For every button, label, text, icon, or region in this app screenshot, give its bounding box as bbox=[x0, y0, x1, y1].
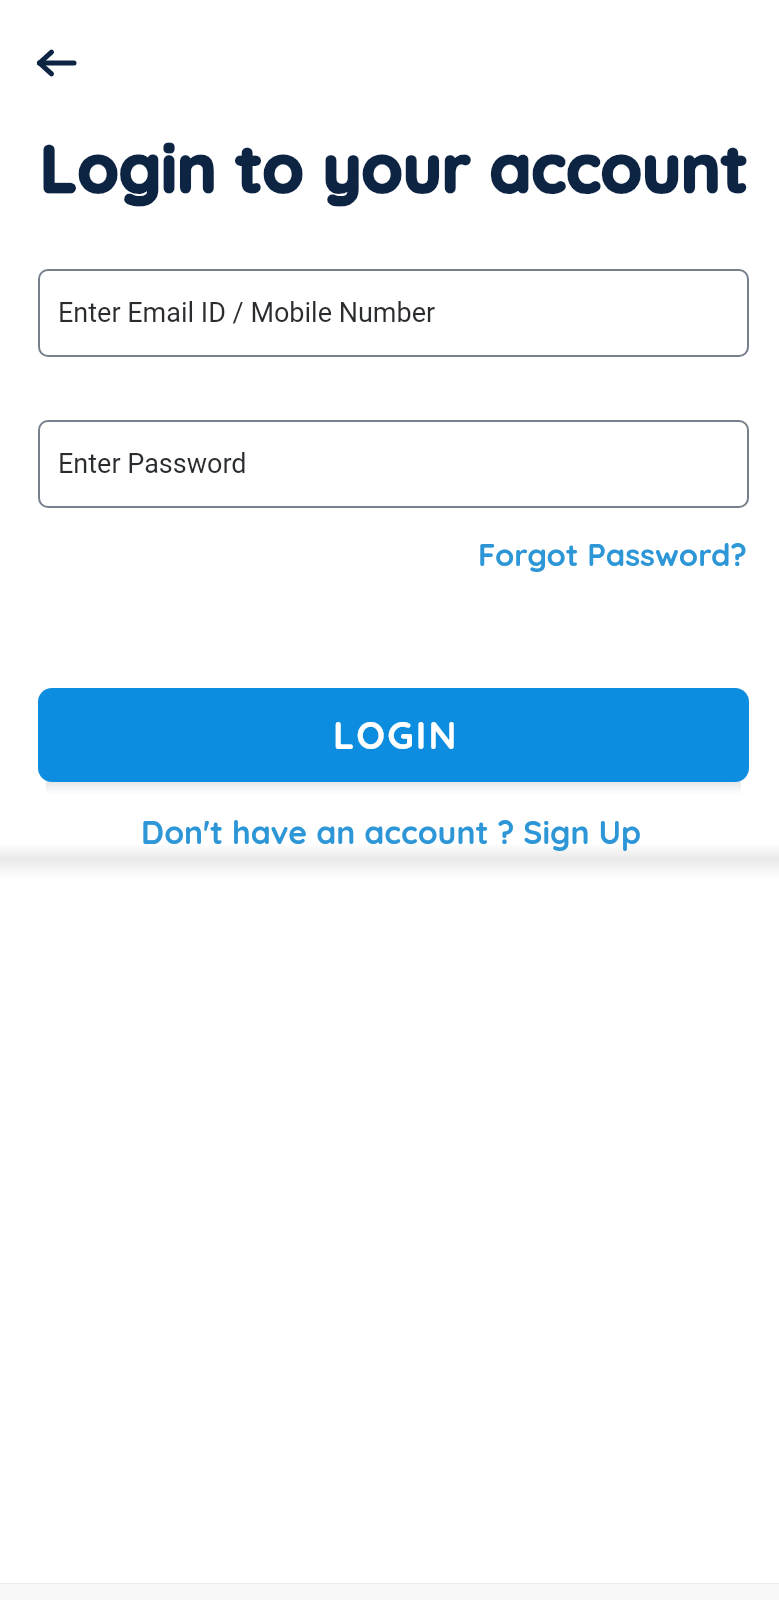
staticText: Login to your account bbox=[40, 126, 749, 209]
staticText: Login to your account bbox=[40, 126, 749, 209]
staticText: Enter Email ID / Mobile Number bbox=[58, 297, 436, 329]
button[interactable]: Enter Email ID / Mobile Number bbox=[38, 269, 749, 357]
button[interactable]: Enter Password bbox=[38, 420, 749, 508]
button[interactable] bbox=[36, 46, 78, 80]
button[interactable]: LOGIN bbox=[38, 688, 749, 782]
button[interactable]: Forgot Password? bbox=[478, 535, 747, 574]
staticText: Enter Password bbox=[58, 448, 247, 480]
button[interactable]: Don't have an account ? Sign Up bbox=[141, 812, 642, 852]
staticText: LOGIN bbox=[333, 711, 459, 759]
